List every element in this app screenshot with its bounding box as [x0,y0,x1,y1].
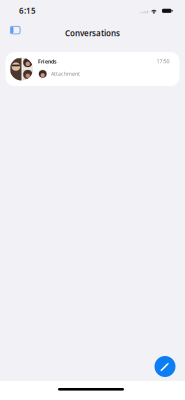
staticText: Attachment [51,70,80,77]
staticText: 6:15 [19,5,36,16]
staticText: Conversations [65,28,120,38]
button[interactable]: Friends [5,52,179,86]
button[interactable]: New message [154,356,175,377]
staticText: Friends [38,58,57,65]
staticText: 17:50 [156,58,169,65]
button[interactable]: Show sidebar [4,20,26,40]
